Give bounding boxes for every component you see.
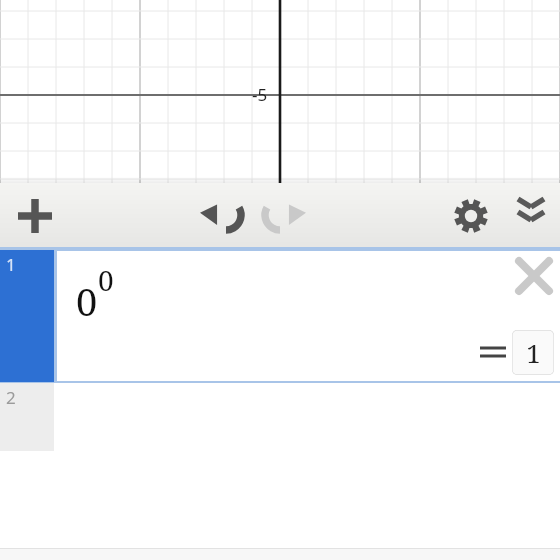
button[interactable]: 1 bbox=[512, 330, 554, 375]
button[interactable]: Redo bbox=[253, 189, 307, 243]
staticText: 0 bbox=[76, 275, 98, 327]
staticText: -5 bbox=[252, 83, 268, 106]
button[interactable]: Add expression bbox=[8, 189, 62, 243]
staticText: 2 bbox=[6, 386, 16, 409]
button[interactable]: Delete expression bbox=[512, 254, 556, 298]
staticText: 1 bbox=[526, 335, 541, 370]
button[interactable]: Collapse keypad bbox=[504, 187, 558, 241]
staticText: 1 bbox=[6, 253, 16, 276]
button[interactable]: 1 bbox=[0, 249, 560, 383]
button[interactable]: Undo bbox=[199, 189, 253, 243]
button[interactable]: Settings bbox=[444, 189, 498, 243]
button[interactable]: 2 bbox=[0, 383, 560, 483]
staticText: 0 bbox=[98, 261, 114, 299]
